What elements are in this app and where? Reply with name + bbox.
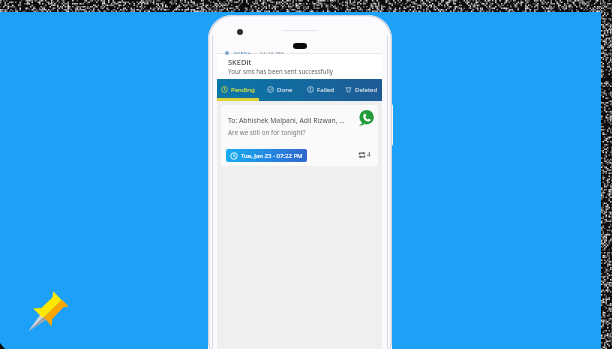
staticText: Tue, Jan 23 - 07:22 PM: [241, 152, 303, 160]
staticText: · 11:16 PM: [257, 50, 284, 54]
button[interactable]: Tue, Jan 23 - 07:22 PM: [226, 149, 307, 162]
button[interactable]: Deleted: [341, 79, 382, 101]
staticText: Pending: [231, 85, 255, 93]
staticText: Done: [277, 85, 293, 93]
button[interactable]: To: Abhishek Malpani, Adil Rizwan, …: [221, 105, 378, 166]
other: WhatsApp: [358, 110, 374, 126]
staticText: 4: [367, 150, 371, 159]
staticText: To: Abhishek Malpani, Adil Rizwan, …: [228, 116, 348, 125]
other: Pin: [22, 285, 72, 335]
button[interactable]: Failed: [300, 79, 341, 101]
staticText: Failed: [317, 85, 334, 93]
staticText: Deleted: [355, 85, 378, 93]
staticText: Your sms has been sent successfully: [228, 67, 333, 75]
button[interactable]: Done: [259, 79, 300, 101]
staticText: SKEDit: [234, 50, 251, 54]
staticText: Are we still on for tonight?: [228, 128, 306, 137]
staticText: SKEDit: [228, 57, 252, 67]
button[interactable]: Pending: [217, 79, 259, 101]
